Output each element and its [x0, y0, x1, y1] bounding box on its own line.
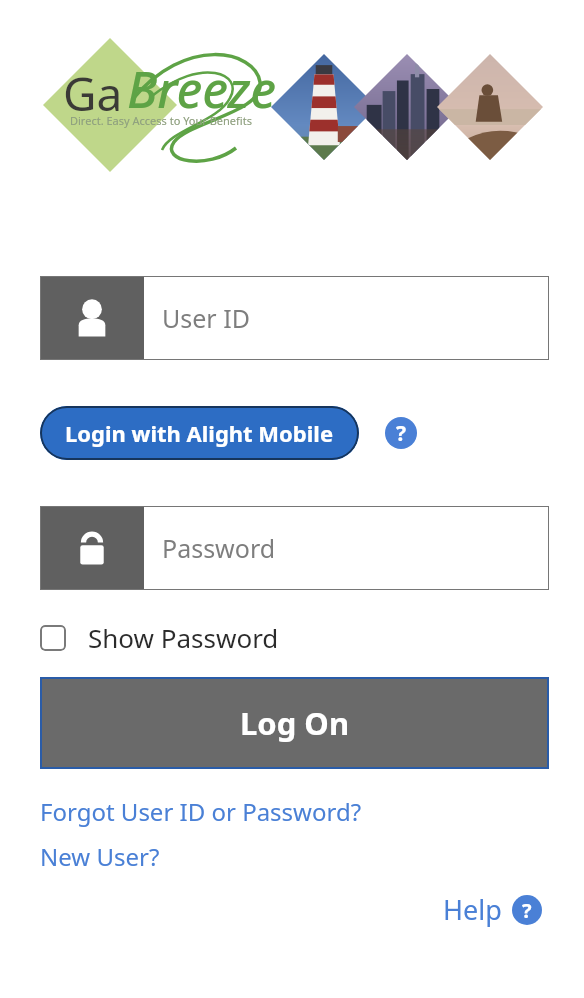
- staticText: Help: [443, 891, 502, 928]
- button[interactable]: Help with Alight Mobile login: [385, 417, 417, 449]
- button[interactable]: Password: [40, 506, 549, 590]
- button[interactable]: Login with Alight Mobile: [40, 406, 359, 460]
- staticText: Ga: [63, 62, 123, 125]
- staticText: ?: [522, 897, 532, 924]
- staticText: New User?: [40, 840, 160, 873]
- button[interactable]: Forgot User ID or Password?: [40, 795, 362, 828]
- button[interactable]: Log On: [40, 677, 549, 769]
- staticText: ?: [396, 419, 407, 448]
- staticText: Login with Alight Mobile: [65, 418, 334, 448]
- button[interactable]: Help: [443, 891, 542, 928]
- staticText: Password: [162, 531, 276, 565]
- staticText: Breeze: [127, 55, 277, 123]
- button[interactable]: User ID: [40, 276, 549, 360]
- staticText: Log On: [240, 702, 350, 744]
- button[interactable]: New User?: [40, 840, 160, 873]
- staticText: Forgot User ID or Password?: [40, 795, 362, 828]
- staticText: Show Password: [88, 620, 279, 655]
- staticText: Direct. Easy Access to Your Benefits: [70, 113, 252, 128]
- button[interactable]: Show Password: [40, 620, 279, 655]
- staticText: User ID: [162, 301, 250, 335]
